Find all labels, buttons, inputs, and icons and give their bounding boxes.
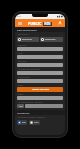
- staticText: +33: [19, 105, 23, 108]
- button[interactable]: [17, 55, 63, 59]
- button[interactable]: ajouter une date: [17, 87, 63, 92]
- staticText: Adresse: [18, 60, 26, 63]
- staticText: Oui: [22, 121, 26, 124]
- staticText: Numéro assuré / société: [18, 101, 42, 104]
- staticText: 9:41: [17, 15, 22, 18]
- button[interactable]: [17, 79, 63, 83]
- staticText: Numéro de téléphone: [18, 68, 40, 71]
- button[interactable]: [17, 96, 63, 100]
- staticText: Code postal: [18, 76, 30, 79]
- button[interactable]: [17, 71, 63, 75]
- button[interactable]: Demandé: [17, 37, 39, 42]
- staticText: Non: [34, 121, 39, 124]
- staticText: Société volontaire transport: [18, 116, 46, 119]
- staticText: Conditions: [17, 111, 30, 114]
- staticText: Depannag: [45, 38, 56, 41]
- button[interactable]: [17, 47, 63, 51]
- staticText: PUBLIC: [28, 21, 42, 26]
- button[interactable]: Oui: [17, 120, 27, 125]
- button[interactable]: Menu: [17, 20, 23, 26]
- staticText: Réclamant: [18, 33, 29, 36]
- button[interactable]: Depannag: [40, 37, 63, 42]
- button[interactable]: Account: [57, 20, 63, 26]
- staticText: Data personnelle: [17, 28, 37, 31]
- button[interactable]: [25, 104, 63, 108]
- button[interactable]: +33: [17, 104, 24, 108]
- button[interactable]: [17, 63, 63, 67]
- staticText: Email: [18, 93, 24, 96]
- staticText: WIN: [44, 22, 51, 26]
- button[interactable]: Non: [29, 120, 40, 125]
- staticText: ajouter une date: [32, 88, 49, 91]
- staticText: Nom: [18, 52, 23, 55]
- staticText: Prénoms: [18, 44, 27, 47]
- staticText: Date: [18, 84, 23, 87]
- staticText: Demandé: [22, 38, 32, 41]
